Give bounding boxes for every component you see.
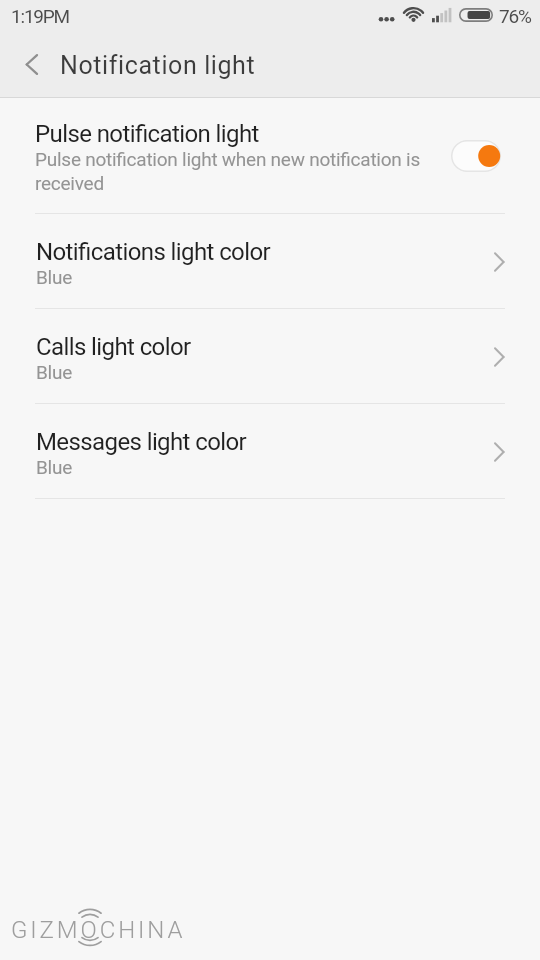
staticText: Notifications light color: [36, 238, 271, 266]
staticText: Pulse notification light: [35, 120, 259, 148]
button[interactable]: Pulse notification light: [0, 98, 540, 213]
button[interactable]: Notifications light color: [0, 214, 540, 308]
staticText: Blue: [36, 456, 73, 478]
other: Open Messages light color: [494, 441, 506, 463]
staticText: Messages light color: [36, 428, 247, 456]
button[interactable]: Back: [0, 32, 58, 97]
button[interactable]: Messages light color: [0, 404, 540, 498]
staticText: 1:19PM: [11, 5, 70, 27]
button[interactable]: Calls light color: [0, 309, 540, 403]
button[interactable]: Pulse notification light: [451, 140, 501, 172]
staticText: 76%: [499, 5, 531, 27]
staticText: GIZMOCHINA: [11, 916, 186, 944]
staticText: Blue: [36, 361, 73, 383]
staticText: Notification light: [60, 51, 256, 80]
other: Open Calls light color: [494, 346, 506, 368]
other: Open Notifications light color: [494, 251, 506, 273]
staticText: Pulse notification light when new notifi…: [35, 148, 447, 195]
staticText: Blue: [36, 266, 73, 288]
staticText: Calls light color: [36, 333, 191, 361]
